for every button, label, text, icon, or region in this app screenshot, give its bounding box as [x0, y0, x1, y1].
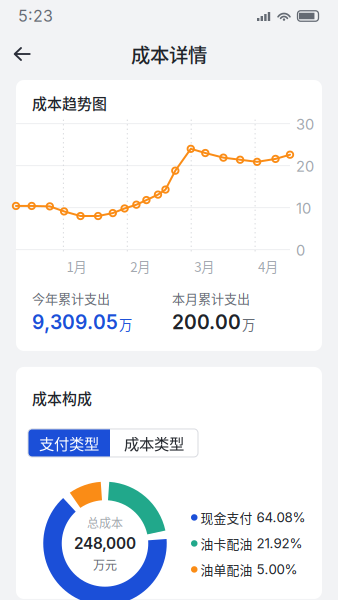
staticText: 200.00 [172, 310, 241, 334]
staticText: 30 [296, 116, 314, 133]
staticText: 20 [296, 158, 314, 175]
staticText: 油卡配油 [200, 534, 252, 553]
staticText: 万 [119, 315, 132, 334]
staticText: 本月累计支出 [172, 289, 250, 307]
staticText: 2月 [130, 257, 150, 276]
staticText: 248,000 [74, 534, 136, 553]
staticText: 油单配油 [200, 560, 252, 579]
staticText: 成本构成 [32, 387, 92, 408]
staticText: 成本类型 [124, 432, 184, 454]
staticText: 万 [242, 315, 255, 334]
staticText: 9,309.05 [32, 310, 118, 334]
staticText: 5.00% [256, 561, 297, 577]
button[interactable]: 成本类型 [110, 429, 198, 457]
staticText: 1月 [66, 257, 86, 276]
staticText: 21.92% [256, 535, 302, 551]
button[interactable]: 支付类型 [28, 429, 110, 457]
staticText: 10 [296, 200, 311, 217]
staticText: 成本趋势图 [32, 92, 107, 114]
staticText: 64.08% [256, 509, 305, 525]
staticText: 0 [296, 242, 305, 259]
staticText: 万元 [93, 556, 117, 573]
staticText: 成本详情 [131, 40, 207, 68]
staticText: 支付类型 [39, 432, 99, 454]
staticText: 今年累计支出 [32, 289, 110, 307]
button[interactable]: Back [2, 32, 42, 76]
staticText: 总成本 [87, 514, 123, 531]
staticText: 4月 [258, 257, 278, 276]
staticText: 5:23 [18, 6, 53, 26]
staticText: 现金支付 [200, 508, 252, 527]
staticText: 3月 [194, 257, 214, 276]
